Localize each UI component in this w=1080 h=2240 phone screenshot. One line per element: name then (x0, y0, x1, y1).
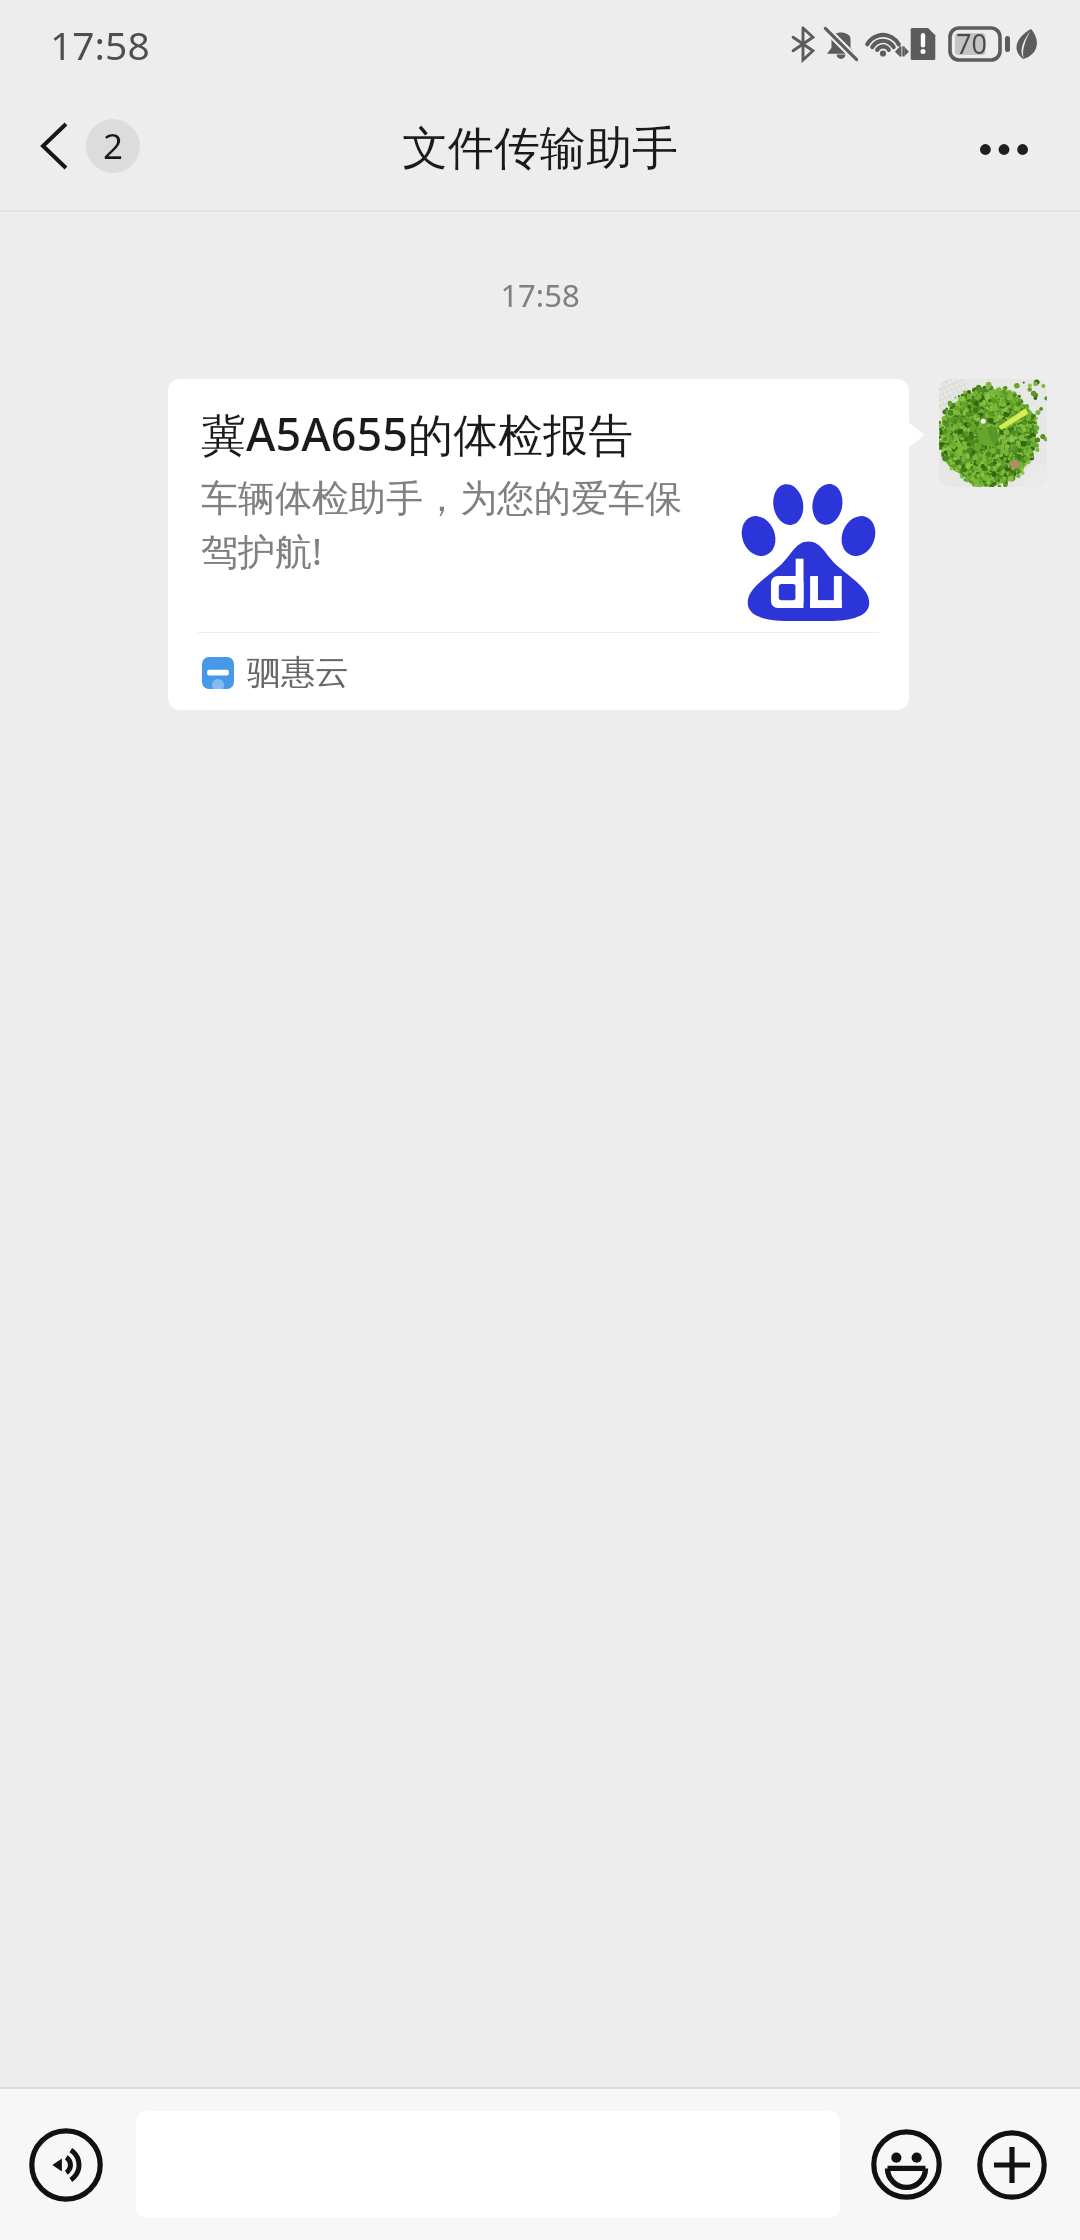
staticText: 文件传输助手 (402, 120, 678, 178)
button[interactable]: Contact avatar (939, 379, 1047, 487)
staticText: 车辆体检助手，为您的爱车保 驾护航! (201, 475, 682, 576)
staticText: 70 (956, 25, 987, 62)
staticText: 17:58 (50, 18, 150, 71)
button[interactable]: Emoji (871, 2129, 942, 2200)
staticText: 冀A5A655的体检报告 (201, 403, 633, 464)
staticText: 驷惠云 (247, 651, 349, 694)
button[interactable]: More options (952, 114, 1080, 185)
button[interactable]: More functions (977, 2130, 1047, 2200)
button[interactable]: 冀A5A655的体检报告 (168, 379, 909, 710)
button[interactable]: Back (0, 105, 160, 193)
staticText: 17:58 (0, 274, 1080, 316)
button[interactable]: Voice message (29, 2128, 103, 2202)
staticText: 2 (103, 122, 124, 170)
